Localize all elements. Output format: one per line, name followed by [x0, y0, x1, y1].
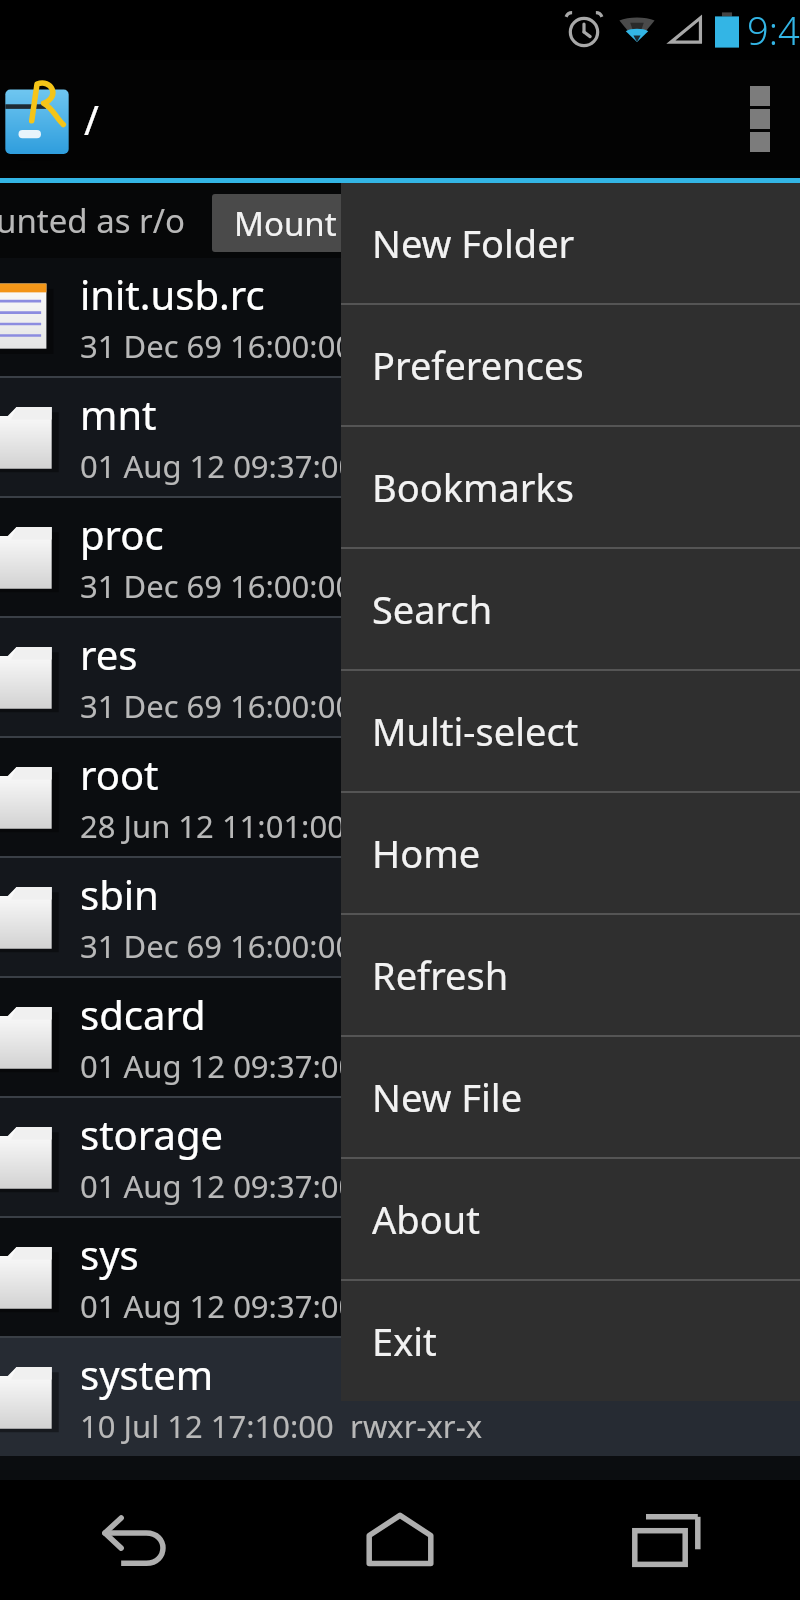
button[interactable]: Home: [341, 793, 800, 913]
staticText: sbin: [80, 867, 159, 921]
staticText: root: [80, 747, 159, 801]
button[interactable]: sdcard: [0, 978, 800, 1096]
button[interactable]: system: [0, 1338, 800, 1456]
button[interactable]: Recent apps: [533, 1480, 800, 1600]
staticText: res: [80, 627, 138, 681]
staticText: Search: [372, 583, 493, 635]
staticText: 31 Dec 69 16:00:00: [80, 565, 354, 607]
button[interactable]: root: [0, 738, 800, 856]
staticText: 28 Jun 12 11:01:00: [80, 805, 345, 847]
button[interactable]: proc: [0, 498, 800, 616]
button[interactable]: sbin: [0, 858, 800, 976]
staticText: 01 Aug 12 09:37:00: [80, 1165, 357, 1207]
button[interactable]: Mount R/W: [212, 194, 472, 252]
button[interactable]: init.usb.rc: [0, 258, 800, 376]
staticText: sdcard: [80, 987, 206, 1041]
staticText: Exit: [372, 1315, 437, 1367]
staticText: mnt: [80, 387, 157, 441]
staticText: Multi-select: [372, 705, 579, 757]
staticText: 31 Dec 69 16:00:00: [80, 685, 354, 727]
button[interactable]: mnt: [0, 378, 800, 496]
button[interactable]: Preferences: [341, 305, 800, 425]
staticText: 31 Dec 69 16:00:00: [80, 325, 354, 367]
staticText: New Folder: [372, 217, 575, 269]
button[interactable]: Back: [0, 1480, 266, 1600]
button[interactable]: sys: [0, 1218, 800, 1336]
button[interactable]: New File: [341, 1037, 800, 1157]
button[interactable]: Multi-select: [341, 671, 800, 791]
staticText: /: [84, 92, 99, 146]
staticText: Bookmarks: [372, 461, 575, 513]
staticText: sys: [80, 1227, 139, 1281]
button[interactable]: storage: [0, 1098, 800, 1216]
button[interactable]: More options: [720, 60, 800, 178]
button[interactable]: Bookmarks: [341, 427, 800, 547]
button[interactable]: Search: [341, 549, 800, 669]
staticText: About: [372, 1193, 480, 1245]
staticText: 10 Jul 12 17:10:00: [80, 1405, 334, 1447]
staticText: Preferences: [372, 339, 584, 391]
button[interactable]: Home: [266, 1480, 533, 1600]
staticText: rwxr-xr-x: [334, 1405, 483, 1447]
staticText: storage: [80, 1107, 224, 1161]
button[interactable]: Refresh: [341, 915, 800, 1035]
button[interactable]: res: [0, 618, 800, 736]
button[interactable]: About: [341, 1159, 800, 1279]
button[interactable]: New Folder: [341, 183, 800, 303]
staticText: New File: [372, 1071, 523, 1123]
staticText: 01 Aug 12 09:37:00: [80, 445, 357, 487]
staticText: 01 Aug 12 09:37:00: [80, 1045, 357, 1087]
staticText: proc: [80, 507, 164, 561]
staticText: system: [80, 1347, 214, 1401]
staticText: Home: [372, 827, 481, 879]
staticText: 9:4: [747, 4, 800, 56]
staticText: Refresh: [372, 949, 509, 1001]
staticText: unted as r/o: [0, 198, 185, 243]
staticText: 31 Dec 69 16:00:00: [80, 925, 354, 967]
staticText: init.usb.rc: [80, 267, 265, 321]
staticText: 01 Aug 12 09:37:00: [80, 1285, 357, 1327]
button[interactable]: Exit: [341, 1281, 800, 1401]
staticText: Mount R/W: [234, 201, 409, 246]
